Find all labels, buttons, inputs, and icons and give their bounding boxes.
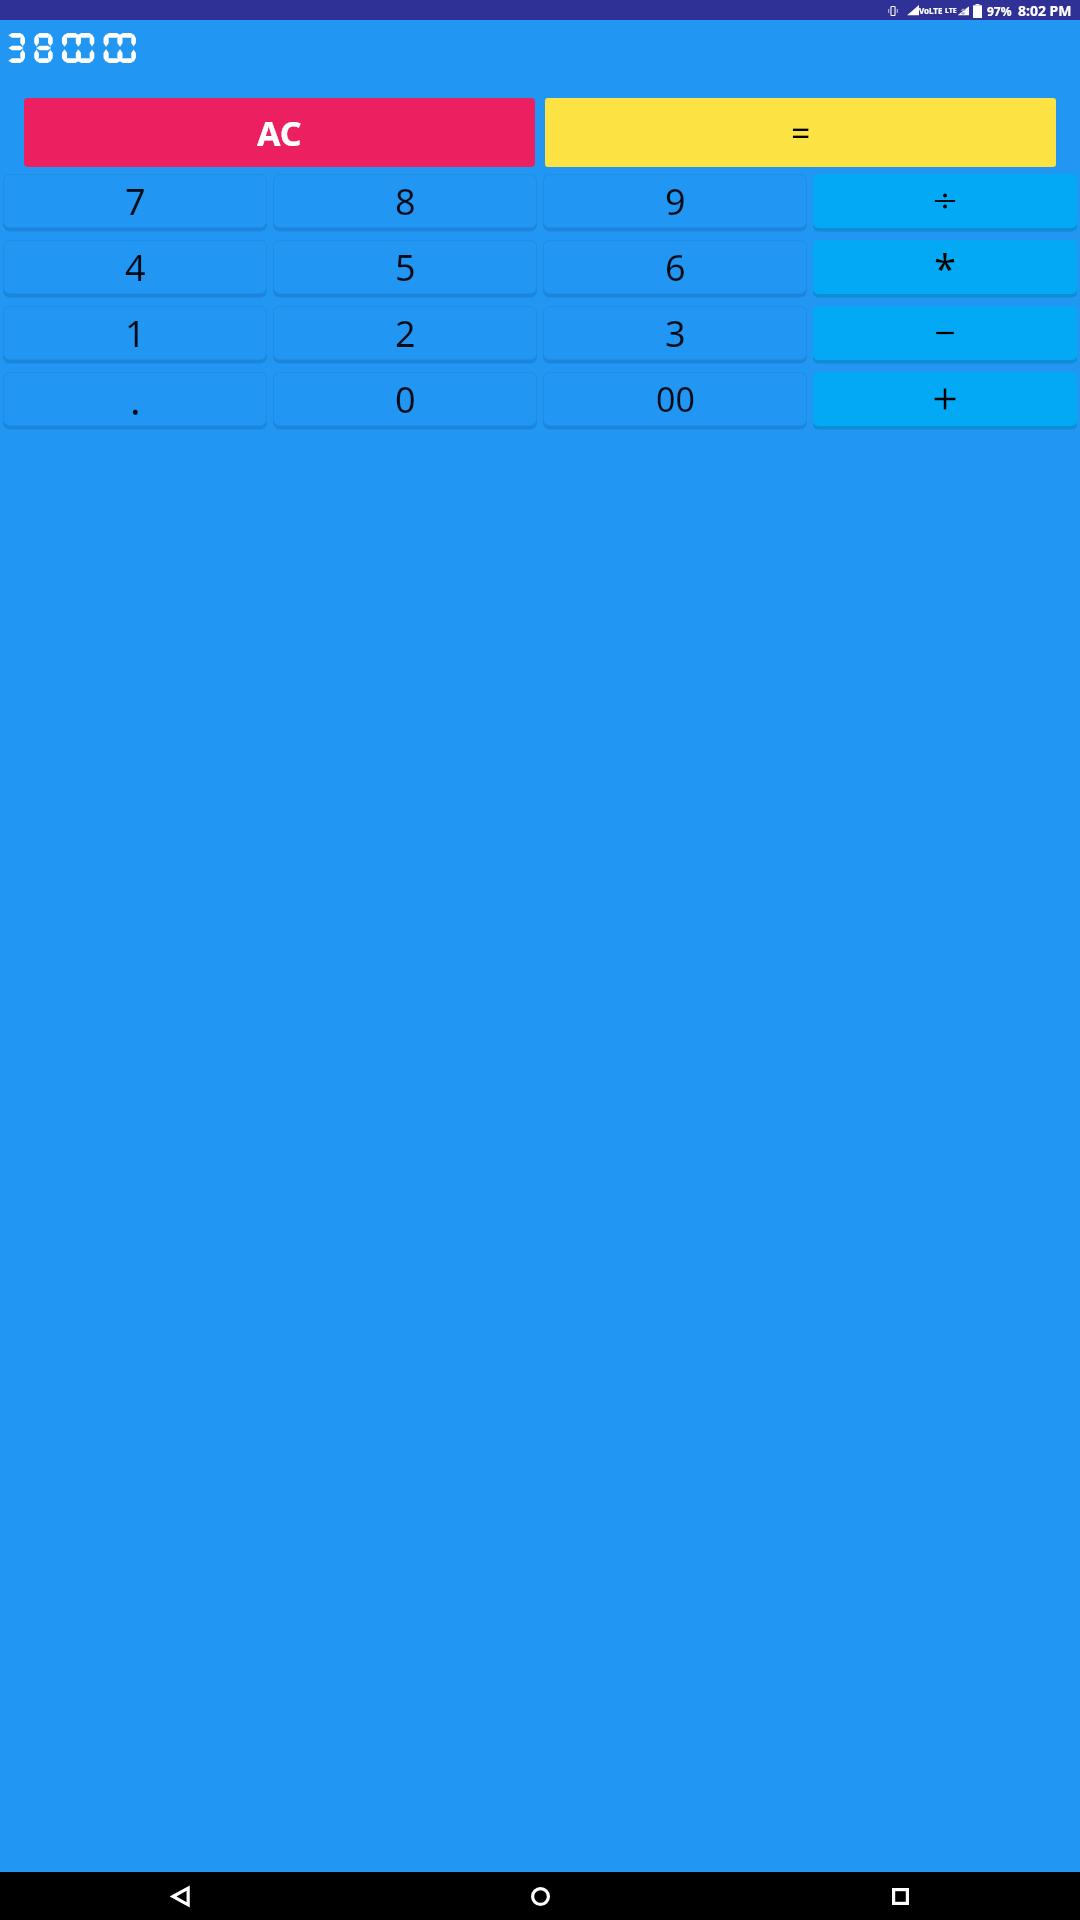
staticText: 1 bbox=[125, 309, 146, 358]
staticText: * bbox=[934, 240, 957, 294]
button[interactable]: 8 bbox=[273, 174, 537, 228]
staticText: 4 bbox=[125, 243, 146, 292]
button[interactable]: Recent apps bbox=[720, 1872, 1080, 1920]
staticText: AC bbox=[257, 110, 302, 156]
button[interactable]: . bbox=[3, 372, 267, 426]
button[interactable]: 5 bbox=[273, 240, 537, 294]
button[interactable] bbox=[813, 306, 1077, 360]
staticText: 8 bbox=[395, 177, 416, 226]
staticText: . bbox=[130, 372, 141, 426]
staticText: 7 bbox=[125, 177, 146, 226]
staticText: LTE bbox=[945, 6, 957, 16]
button[interactable]: 9 bbox=[543, 174, 807, 228]
button[interactable]: 3 bbox=[543, 306, 807, 360]
staticText: 97% bbox=[987, 3, 1012, 19]
button[interactable]: 2 bbox=[273, 306, 537, 360]
button[interactable] bbox=[813, 372, 1077, 426]
staticText: 5 bbox=[395, 243, 416, 292]
button[interactable]: * bbox=[813, 240, 1077, 294]
staticText: VoLTE bbox=[919, 5, 943, 16]
staticText: 2 bbox=[395, 309, 416, 358]
staticText: 8:02 PM bbox=[1018, 1, 1072, 20]
button[interactable]: 0 bbox=[273, 372, 537, 426]
staticText: 00 bbox=[656, 376, 695, 422]
staticText: 6 bbox=[665, 243, 686, 292]
staticText: 0 bbox=[395, 375, 416, 424]
button[interactable]: Home bbox=[360, 1872, 720, 1920]
button[interactable]: AC bbox=[24, 98, 535, 167]
staticText: = bbox=[791, 110, 811, 156]
button[interactable]: 4 bbox=[3, 240, 267, 294]
button[interactable]: Back bbox=[0, 1872, 360, 1920]
button[interactable]: 1 bbox=[3, 306, 267, 360]
staticText: 9 bbox=[665, 177, 686, 226]
button[interactable]: 7 bbox=[3, 174, 267, 228]
button[interactable]: 00 bbox=[543, 372, 807, 426]
button[interactable]: = bbox=[545, 98, 1056, 167]
button[interactable] bbox=[813, 174, 1077, 228]
staticText: 3 bbox=[665, 309, 686, 358]
button[interactable]: 6 bbox=[543, 240, 807, 294]
